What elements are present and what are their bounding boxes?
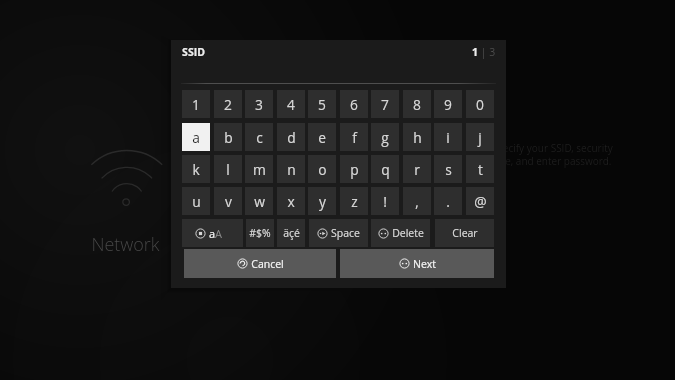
button[interactable]: y	[308, 187, 336, 215]
button[interactable]: l	[214, 155, 242, 183]
staticText: k	[192, 160, 200, 179]
button[interactable]: x	[277, 187, 305, 215]
staticText: 5	[318, 95, 326, 114]
button[interactable]: r	[403, 155, 431, 183]
staticText: o	[318, 160, 327, 179]
staticText: a	[192, 128, 200, 147]
staticText: äçé	[283, 226, 300, 240]
button[interactable]: c	[245, 123, 273, 151]
button[interactable]: n	[277, 155, 305, 183]
staticText: w	[254, 192, 265, 211]
staticText: u	[192, 192, 201, 211]
button[interactable]: Cancel	[184, 249, 336, 278]
staticText: r	[414, 160, 420, 179]
button[interactable]: @	[466, 187, 494, 215]
staticText: .	[446, 192, 450, 211]
staticText: Cancel	[251, 257, 284, 271]
button[interactable]: 9	[434, 90, 462, 118]
button[interactable]: s	[434, 155, 462, 183]
staticText: aA	[209, 226, 223, 241]
staticText: 6	[350, 95, 358, 114]
staticText: Next	[413, 257, 436, 271]
staticText: n	[287, 160, 296, 179]
button[interactable]: g	[371, 123, 399, 151]
staticText: s	[445, 160, 452, 179]
button[interactable]: .	[434, 187, 462, 215]
staticText: SSID	[182, 45, 205, 59]
staticText: Delete	[392, 226, 424, 240]
staticText: #$%	[249, 226, 271, 240]
button[interactable]: k	[182, 155, 210, 183]
staticText: Clear	[452, 226, 478, 240]
button[interactable]: Symbols	[246, 219, 274, 247]
button[interactable]: w	[245, 187, 273, 215]
button[interactable]: b	[214, 123, 242, 151]
button[interactable]: p	[340, 155, 368, 183]
staticText: e	[318, 128, 326, 147]
button[interactable]: u	[182, 187, 210, 215]
button[interactable]: z	[340, 187, 368, 215]
button[interactable]: Accented letters	[277, 219, 305, 247]
staticText: !	[383, 192, 387, 211]
button[interactable]: !	[371, 187, 399, 215]
staticText: 2	[224, 95, 232, 114]
staticText: z	[351, 192, 358, 211]
staticText: b	[224, 128, 233, 147]
staticText: v	[225, 192, 232, 211]
staticText: l	[226, 160, 230, 179]
button[interactable]: 0	[466, 90, 494, 118]
staticText: j	[478, 128, 482, 147]
staticText: x	[287, 192, 295, 211]
staticText: g	[381, 128, 389, 147]
staticText: type, and enter password.	[490, 154, 612, 168]
button[interactable]: a	[182, 123, 210, 151]
button[interactable]: d	[277, 123, 305, 151]
button[interactable]: 2	[214, 90, 242, 118]
staticText: 3	[255, 95, 263, 114]
button[interactable]: 5	[308, 90, 336, 118]
staticText: 4	[287, 95, 295, 114]
button[interactable]: q	[371, 155, 399, 183]
staticText: @	[474, 192, 487, 211]
button[interactable]: h	[403, 123, 431, 151]
button[interactable]: j	[466, 123, 494, 151]
button[interactable]: Space	[309, 219, 368, 247]
staticText: d	[287, 128, 296, 147]
button[interactable]: 6	[340, 90, 368, 118]
staticText: p	[350, 160, 359, 179]
button[interactable]: ,	[403, 187, 431, 215]
staticText: ,	[415, 192, 419, 211]
button[interactable]: m	[245, 155, 273, 183]
button[interactable]: i	[434, 123, 462, 151]
button[interactable]: v	[214, 187, 242, 215]
staticText: q	[381, 160, 390, 179]
staticText: Space	[331, 226, 360, 240]
button[interactable]: Delete	[371, 219, 430, 247]
staticText: m	[253, 160, 266, 179]
staticText: h	[413, 128, 422, 147]
staticText: 1 | 3	[472, 45, 496, 59]
button[interactable]: Clear	[435, 219, 494, 247]
staticText: 7	[381, 95, 389, 114]
staticText: Specify your SSID, security	[491, 141, 613, 155]
button[interactable]: Next	[340, 249, 494, 278]
staticText: c	[256, 128, 263, 147]
button[interactable]: 4	[277, 90, 305, 118]
staticText: t	[478, 160, 483, 179]
button[interactable]: t	[466, 155, 494, 183]
button[interactable]: 7	[371, 90, 399, 118]
staticText: 8	[413, 95, 421, 114]
staticText: 9	[444, 95, 452, 114]
staticText: y	[319, 192, 326, 211]
button[interactable]: e	[308, 123, 336, 151]
staticText: 1	[192, 95, 200, 114]
button[interactable]: o	[308, 155, 336, 183]
staticText: Network	[91, 232, 160, 257]
staticText: f	[352, 128, 357, 147]
button[interactable]: Switch letter case	[182, 219, 243, 247]
button[interactable]: 8	[403, 90, 431, 118]
button[interactable]: 3	[245, 90, 273, 118]
staticText: 0	[476, 95, 484, 114]
button[interactable]: f	[340, 123, 368, 151]
button[interactable]: 1	[182, 90, 210, 118]
